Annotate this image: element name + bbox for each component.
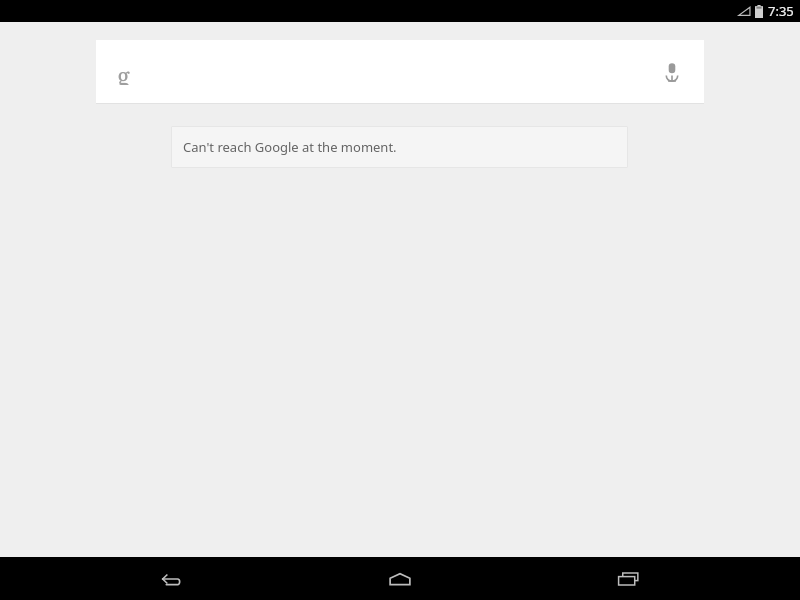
button[interactable]: Home — [371, 557, 429, 600]
button[interactable]: Google — [96, 40, 704, 104]
button[interactable]: Voice search — [648, 48, 696, 96]
staticText: Can't reach Google at the moment. — [183, 138, 397, 156]
other: Google — [110, 59, 136, 85]
staticText: 7:35 — [768, 2, 794, 20]
button[interactable]: Recent apps — [600, 557, 658, 600]
button[interactable]: Back — [142, 557, 200, 600]
button[interactable]: Can't reach Google at the moment. — [171, 126, 628, 168]
staticText: g — [117, 59, 130, 85]
